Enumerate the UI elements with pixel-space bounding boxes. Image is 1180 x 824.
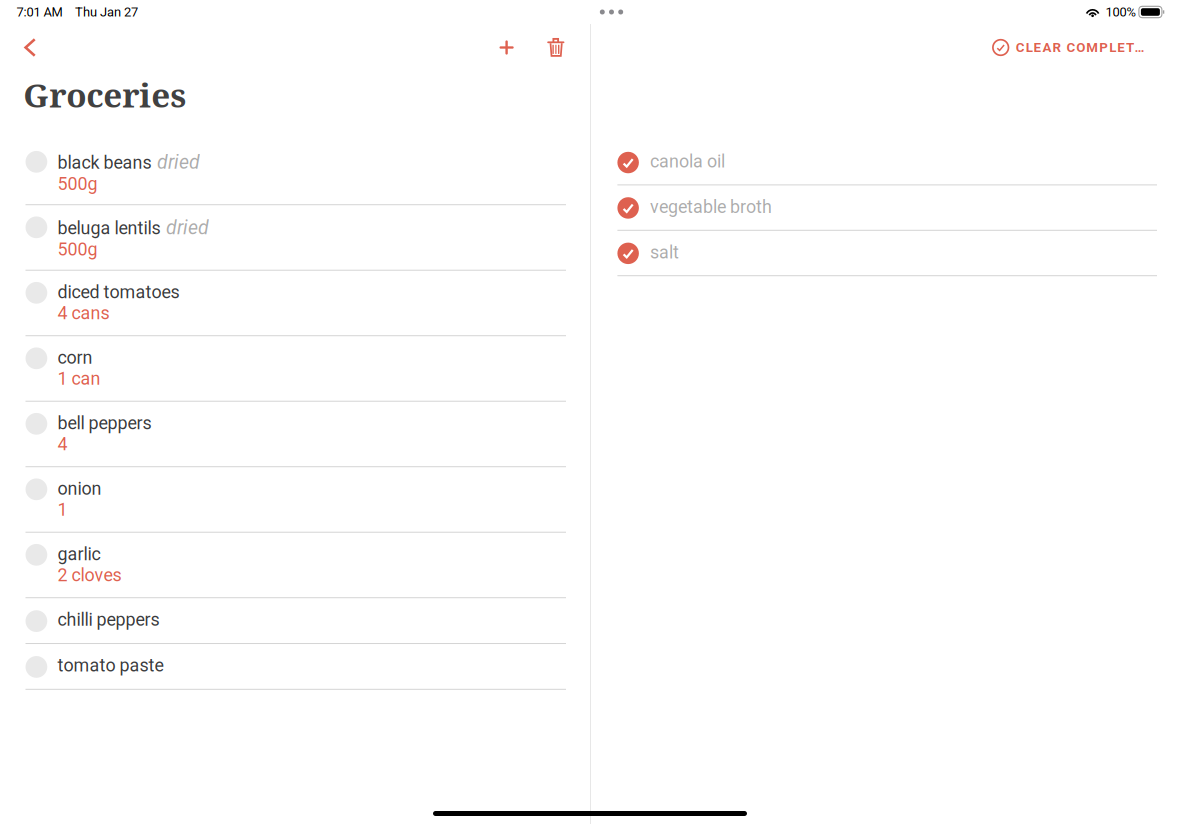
staticText: beluga lentils	[57, 218, 160, 239]
staticText: garlic	[57, 544, 100, 565]
button[interactable]: CLEAR COMPLETED	[993, 40, 1153, 55]
staticText: 100%	[1105, 4, 1135, 20]
staticText: CLEAR COMPLETED	[1016, 40, 1153, 55]
staticText: tomato paste	[57, 655, 163, 676]
button[interactable]: Delete list	[547, 38, 564, 57]
button[interactable]: black beans	[25, 140, 566, 205]
button[interactable]: bell peppers	[25, 402, 566, 467]
button[interactable]: garlic	[25, 533, 566, 598]
staticText: 500g	[57, 173, 97, 194]
staticText: black beans	[57, 152, 151, 173]
staticText: 2 cloves	[57, 565, 121, 586]
staticText: 4 cans	[57, 303, 109, 324]
button[interactable]: salt	[617, 231, 1157, 276]
staticText: chilli peppers	[57, 609, 159, 630]
staticText: 500g	[57, 239, 97, 260]
staticText: corn	[57, 347, 92, 368]
button[interactable]: chilli peppers	[25, 598, 566, 644]
button[interactable]: Back	[24, 38, 36, 57]
staticText: diced tomatoes	[57, 282, 179, 303]
button[interactable]: Add item	[499, 40, 514, 55]
staticText: vegetable broth	[650, 196, 772, 217]
button[interactable]: corn	[25, 336, 566, 402]
staticText: 1 can	[57, 368, 100, 389]
button[interactable]: diced tomatoes	[25, 271, 566, 336]
staticText: Thu Jan 27	[75, 4, 138, 20]
button[interactable]: onion	[25, 467, 566, 533]
button[interactable]: beluga lentils	[25, 205, 566, 271]
staticText: 7:01 AM	[16, 4, 62, 20]
staticText: bell peppers	[57, 413, 151, 434]
staticText: dried	[166, 216, 209, 239]
staticText: canola oil	[650, 151, 725, 172]
staticText: 4	[57, 434, 67, 455]
button[interactable]: canola oil	[617, 140, 1157, 185]
staticText: 1	[57, 499, 67, 520]
staticText: Groceries	[23, 72, 186, 117]
button[interactable]: vegetable broth	[617, 185, 1157, 231]
staticText: dried	[157, 151, 200, 173]
button[interactable]: tomato paste	[25, 644, 566, 690]
staticText: onion	[57, 478, 101, 499]
staticText: salt	[650, 242, 679, 263]
